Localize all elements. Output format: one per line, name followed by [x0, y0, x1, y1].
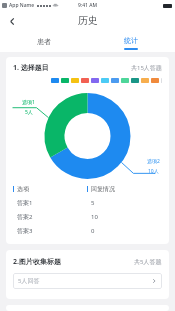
staticText: 答案2 — [17, 213, 87, 221]
staticText: 5 — [91, 199, 162, 207]
button[interactable]: Back — [4, 13, 20, 29]
staticText: 统计 — [124, 36, 138, 45]
staticText: 答案3 — [17, 227, 87, 235]
staticText: 5人回答 — [18, 277, 40, 285]
staticText: 患者 — [37, 37, 51, 46]
staticText: 0 — [91, 227, 162, 235]
staticText: 9:41 AM — [78, 2, 98, 9]
staticText: 10 — [91, 213, 162, 221]
staticText: 历史 — [78, 14, 98, 27]
staticText: 回复情况 — [91, 185, 115, 193]
staticText: App Name — [9, 2, 35, 9]
staticText: 答案1 — [17, 199, 87, 207]
staticText: 共5人答题 — [134, 258, 162, 266]
button[interactable]: 患者 — [0, 30, 87, 52]
staticText: 2.图片收集标题 — [13, 257, 61, 267]
staticText: 1. 选择题目 — [13, 63, 49, 73]
staticText: 选项2 — [147, 158, 160, 165]
staticText: 10人 — [148, 168, 159, 175]
button[interactable]: 5人回答 — [13, 273, 162, 289]
staticText: 选项 — [17, 185, 29, 193]
staticText: 5人 — [25, 109, 33, 116]
staticText: 共15人答题 — [131, 64, 162, 72]
button[interactable]: 统计 — [87, 30, 175, 52]
staticText: 选项1 — [22, 99, 35, 106]
